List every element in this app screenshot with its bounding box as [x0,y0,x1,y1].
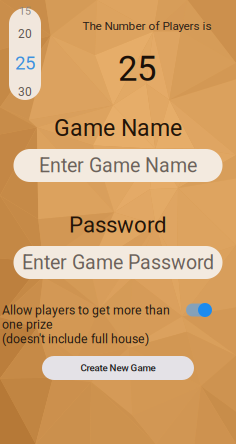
staticText: 20 [18,27,32,41]
staticText: 30 [18,85,32,99]
staticText: Enter Game Name [39,154,197,177]
staticText: 15 [19,5,31,17]
staticText: The Number of Players is [82,19,211,33]
button[interactable]: Enter Game Name [13,149,222,182]
staticText: Allow players to get more than one prize… [2,303,170,346]
staticText: 25 [15,52,35,74]
staticText: Password [69,212,167,238]
button[interactable]: Number of players picker [9,8,41,100]
button[interactable]: Allow players to get more than one prize [185,303,212,317]
staticText: 25 [118,49,156,89]
staticText: Create New Game [80,362,155,374]
staticText: Game Name [54,114,182,141]
staticText: Enter Game Password [22,251,214,274]
button[interactable]: Enter Game Password [13,246,222,279]
button[interactable]: Create New Game [42,356,194,380]
